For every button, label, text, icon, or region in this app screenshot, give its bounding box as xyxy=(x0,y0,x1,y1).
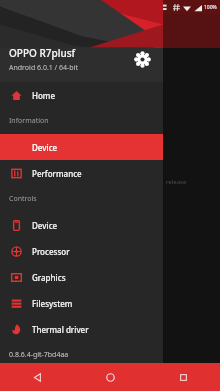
staticText: Home xyxy=(32,90,56,101)
button[interactable]: Device xyxy=(0,134,163,160)
staticText: Thermal driver xyxy=(32,324,89,335)
staticText: Processor xyxy=(32,246,70,257)
button[interactable]: Home xyxy=(0,82,163,108)
staticText: Controls xyxy=(9,194,37,204)
button[interactable]: Performance xyxy=(0,160,163,186)
staticText: release xyxy=(166,178,187,186)
button[interactable]: Thermal driver xyxy=(0,316,163,342)
staticText: 0.8.6.4-git-7bd4aa xyxy=(9,350,69,360)
button[interactable]: Processor xyxy=(0,238,163,264)
staticText: Information xyxy=(9,116,49,126)
staticText: Device xyxy=(32,220,58,231)
button[interactable]: Home xyxy=(74,363,147,391)
staticText: OPPO R7plusf xyxy=(9,46,76,60)
button[interactable]: Back xyxy=(0,363,74,391)
staticText: Filesystem xyxy=(32,298,73,309)
staticText: 100% xyxy=(204,4,217,11)
button[interactable]: Graphics xyxy=(0,264,163,290)
staticText: Device xyxy=(32,142,58,153)
staticText: Android 6.0.1 / 64-bit xyxy=(9,63,78,73)
button[interactable]: Device xyxy=(0,212,163,238)
button[interactable]: Settings xyxy=(131,48,153,70)
button[interactable]: Recents xyxy=(147,363,220,391)
staticText: Graphics xyxy=(32,272,66,283)
staticText: Performance xyxy=(32,168,82,179)
button[interactable]: Filesystem xyxy=(0,290,163,316)
